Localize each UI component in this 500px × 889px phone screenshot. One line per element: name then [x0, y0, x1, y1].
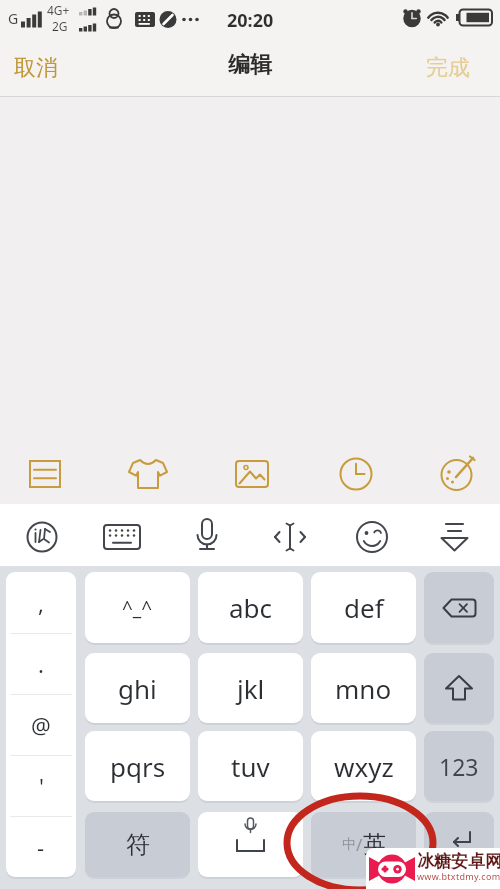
button[interactable]: tuv [198, 731, 303, 801]
staticText: 4G+ [47, 2, 70, 18]
staticText: www.btxtdmy.com [417, 870, 500, 882]
button[interactable]: . [6, 633, 76, 694]
button[interactable] [427, 509, 483, 565]
button[interactable] [15, 445, 75, 503]
staticText: , [38, 588, 44, 618]
button[interactable]: ghi [85, 653, 190, 723]
button[interactable] [344, 509, 400, 565]
button[interactable] [14, 509, 70, 565]
button[interactable] [222, 445, 282, 503]
button[interactable] [326, 445, 386, 503]
button[interactable]: 符 [85, 812, 190, 877]
staticText: 123 [439, 751, 479, 782]
button[interactable]: ' [6, 755, 76, 816]
staticText: ghi [118, 671, 157, 706]
button[interactable] [262, 509, 318, 565]
button[interactable]: def [311, 572, 416, 643]
button[interactable]: pqrs [85, 731, 190, 801]
staticText: mno [335, 671, 392, 706]
staticText: 取消 [14, 54, 58, 82]
staticText: 编辑 [228, 51, 272, 79]
staticText: 符 [126, 830, 150, 860]
button[interactable]: mno [311, 653, 416, 723]
button[interactable] [198, 812, 303, 877]
button[interactable]: abc [198, 572, 303, 643]
button[interactable]: , [6, 572, 76, 633]
button[interactable]: jkl [198, 653, 303, 723]
staticText: 中 [342, 836, 356, 854]
button[interactable] [424, 812, 494, 877]
staticText: 完成 [426, 54, 470, 82]
staticText: 冰糖安卓网 [417, 851, 500, 872]
button[interactable]: 中 [311, 812, 416, 877]
staticText: 英 [363, 830, 386, 859]
staticText: ' [39, 771, 44, 801]
button[interactable]: 取消 [6, 44, 50, 72]
staticText: - [37, 832, 45, 862]
staticText: wxyz [334, 749, 394, 784]
staticText: pqrs [110, 749, 166, 784]
staticText: G [8, 9, 19, 28]
button[interactable] [94, 509, 150, 565]
button[interactable]: - [6, 816, 76, 877]
button[interactable] [424, 572, 494, 643]
staticText: 20:20 [227, 8, 274, 31]
button[interactable]: 123 [424, 731, 494, 801]
button[interactable]: @ [6, 694, 76, 755]
staticText: . [38, 649, 44, 679]
staticText: ^_^ [122, 595, 153, 621]
button[interactable]: ^_^ [85, 572, 190, 643]
button[interactable] [179, 509, 235, 565]
button[interactable] [424, 653, 494, 723]
button[interactable]: wxyz [311, 731, 416, 801]
staticText: 2G [52, 18, 68, 34]
button[interactable] [118, 445, 178, 503]
staticText: tuv [231, 749, 270, 784]
staticText: def [344, 590, 384, 625]
button[interactable] [428, 445, 488, 503]
staticText: @ [31, 710, 51, 740]
button[interactable]: 完成 [412, 44, 456, 72]
staticText: jkl [237, 671, 265, 706]
staticText: / [356, 833, 363, 856]
staticText: abc [229, 590, 273, 625]
